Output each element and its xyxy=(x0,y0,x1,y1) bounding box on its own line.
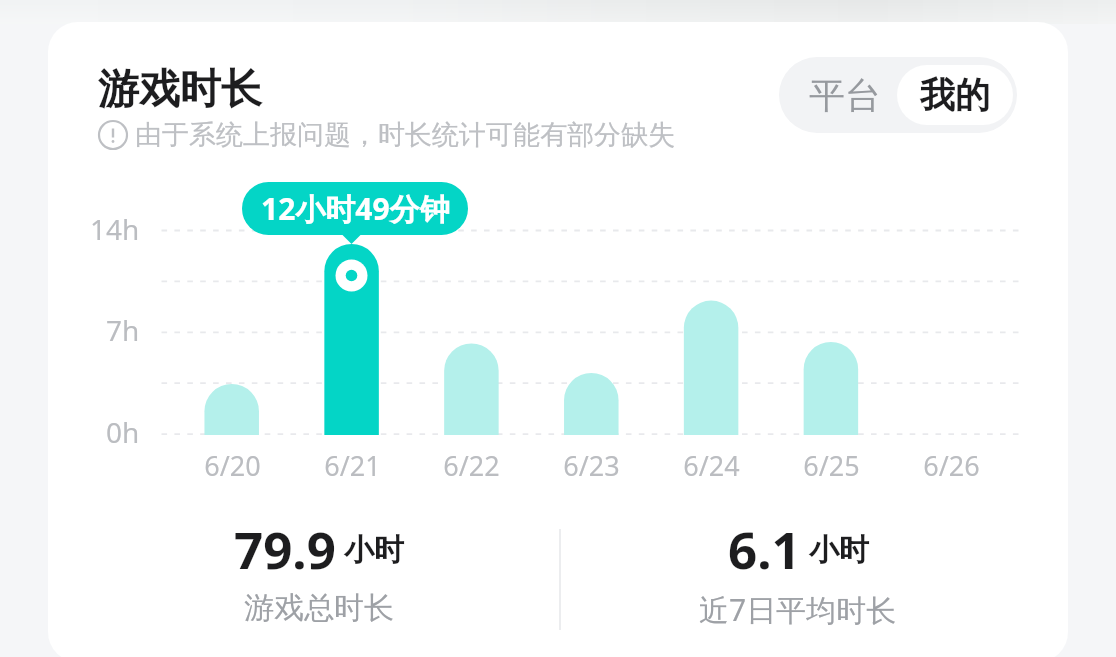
staticText: 平台 xyxy=(809,73,881,118)
staticText: 0h xyxy=(106,413,140,445)
button[interactable]: 12小时49分钟 xyxy=(242,182,468,235)
button[interactable]: 平台 xyxy=(779,57,897,133)
staticText: 由于系统上报问题，时长统计可能有部分缺失 xyxy=(135,118,675,152)
staticText: 6/25 xyxy=(803,447,860,484)
staticText: 游戏时长 xyxy=(98,64,262,116)
staticText: 6/20 xyxy=(204,447,261,484)
staticText: 6/22 xyxy=(443,447,500,484)
staticText: 我的 xyxy=(920,73,990,117)
staticText: 近7日平均时长 xyxy=(699,589,897,630)
staticText: 6.1 xyxy=(728,514,801,574)
staticText: 游戏总时长 xyxy=(244,589,394,627)
staticText: 7h xyxy=(106,311,140,343)
button[interactable]: 我的 xyxy=(897,65,1013,125)
staticText: 小时 xyxy=(344,531,404,569)
staticText: 小时 xyxy=(809,531,869,569)
staticText: 6/24 xyxy=(683,447,740,484)
staticText: 79.9 xyxy=(234,514,336,574)
staticText: 6/23 xyxy=(563,447,620,484)
staticText: 6/21 xyxy=(324,447,381,484)
staticText: 6/26 xyxy=(923,447,980,484)
staticText: 14h xyxy=(90,210,140,242)
staticText: 12小时49分钟 xyxy=(261,188,450,229)
